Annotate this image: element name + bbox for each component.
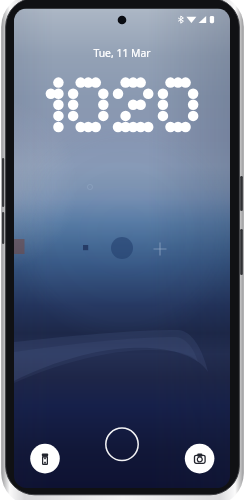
button[interactable]: Unlock with fingerprint — [106, 428, 139, 461]
button[interactable]: Flashlight — [30, 444, 60, 474]
staticText: Tue, 11 Mar — [72, 46, 172, 59]
button[interactable]: Camera — [185, 444, 215, 474]
